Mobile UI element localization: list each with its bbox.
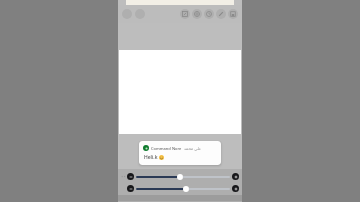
staticText: Heli.k	[144, 154, 158, 161]
button[interactable]: Increase	[232, 185, 239, 192]
button[interactable]: Menu	[122, 9, 132, 19]
button[interactable]: Share	[180, 9, 190, 19]
button[interactable]: Edit	[216, 9, 226, 19]
button[interactable]: Decrease	[127, 185, 134, 192]
button[interactable]: Decrease	[127, 173, 134, 180]
staticText: Command Nore	[151, 146, 182, 151]
button[interactable]: Save	[228, 9, 238, 19]
button[interactable]: Increase	[232, 173, 239, 180]
button[interactable]: Grid	[192, 9, 202, 19]
button[interactable]	[136, 173, 230, 180]
staticText: علي محمد	[184, 146, 202, 151]
button[interactable]: Command Nore	[139, 141, 221, 165]
button[interactable]	[136, 185, 230, 192]
button[interactable]: History	[204, 9, 214, 19]
button[interactable]: Back	[135, 9, 145, 19]
